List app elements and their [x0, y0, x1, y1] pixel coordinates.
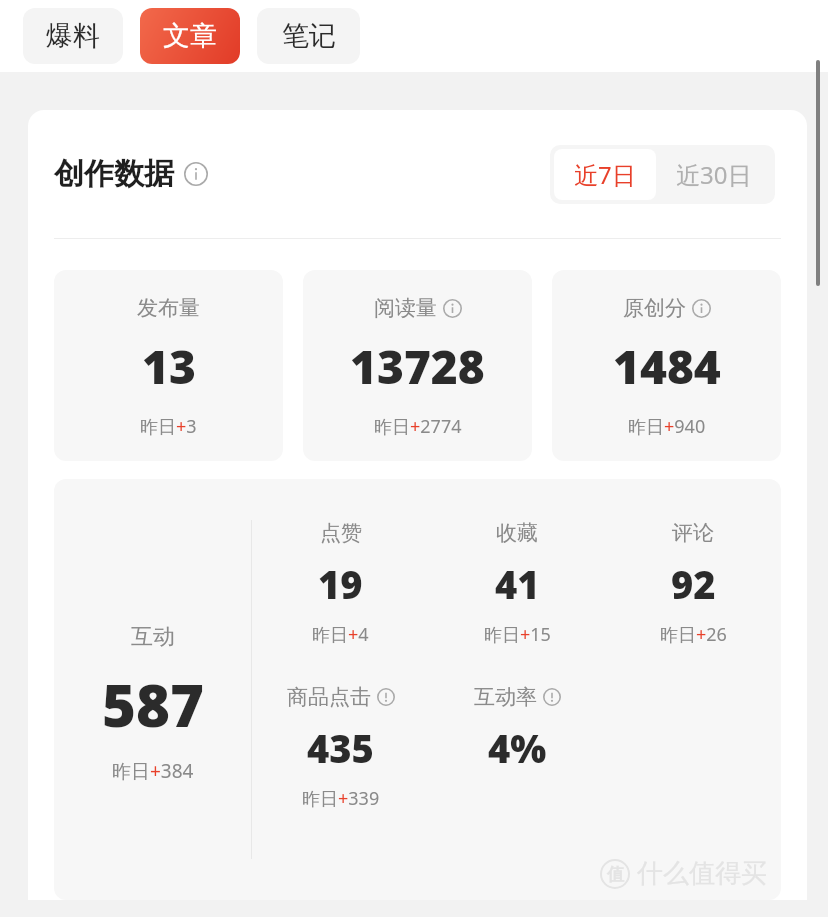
staticText: 值: [607, 864, 624, 885]
staticText: 13: [142, 335, 196, 398]
staticText: 阅读量: [374, 295, 437, 321]
staticText: 13728: [350, 335, 485, 398]
staticText: 近7日: [574, 158, 636, 191]
staticText: 文章: [163, 19, 217, 53]
staticText: 创作数据: [54, 155, 174, 193]
button[interactable]: 近30日: [656, 149, 771, 200]
staticText: 昨日+3: [140, 414, 197, 439]
staticText: 587: [102, 665, 204, 744]
staticText: 昨日+26: [660, 622, 727, 647]
button[interactable]: 商品点击: [252, 684, 429, 811]
button[interactable]: 评论: [605, 520, 781, 647]
staticText: 近30日: [676, 158, 752, 191]
staticText: 互动: [131, 623, 175, 651]
button[interactable]: 文章: [140, 8, 240, 64]
other: Info: [377, 688, 395, 706]
staticText: 435: [307, 722, 374, 774]
staticText: 商品点击: [287, 684, 371, 710]
other: Info: [692, 299, 711, 318]
staticText: 昨日+339: [302, 786, 380, 811]
staticText: 笔记: [282, 19, 336, 53]
staticText: 昨日+940: [628, 414, 706, 439]
staticText: 发布量: [137, 295, 200, 321]
other: Info: [184, 162, 208, 186]
button[interactable]: 阅读量: [303, 270, 532, 461]
staticText: 19: [318, 558, 363, 610]
button[interactable]: 发布量: [54, 270, 283, 461]
staticText: 昨日+384: [112, 758, 194, 784]
button[interactable]: 收藏: [429, 520, 605, 647]
button[interactable]: 原创分: [552, 270, 781, 461]
staticText: 原创分: [623, 295, 686, 321]
staticText: 互动率: [474, 684, 537, 710]
staticText: 什么值得买: [637, 857, 767, 890]
staticText: 1484: [613, 335, 721, 398]
staticText: 点赞: [320, 520, 362, 546]
staticText: 爆料: [46, 19, 100, 53]
staticText: 昨日+4: [312, 622, 369, 647]
button[interactable]: 互动: [54, 479, 251, 900]
staticText: 评论: [672, 520, 714, 546]
button[interactable]: 近7日: [554, 149, 656, 200]
staticText: 收藏: [496, 520, 538, 546]
button[interactable]: 笔记: [257, 8, 360, 64]
button[interactable]: 爆料: [23, 8, 123, 64]
staticText: 92: [671, 558, 716, 610]
staticText: 昨日+15: [484, 622, 551, 647]
button[interactable]: 点赞: [252, 520, 429, 647]
staticText: 4%: [488, 722, 547, 774]
other: Info: [443, 299, 462, 318]
staticText: 昨日+2774: [374, 414, 462, 439]
staticText: 41: [495, 558, 540, 610]
button[interactable]: 互动率: [429, 684, 605, 808]
other: Info: [543, 688, 561, 706]
